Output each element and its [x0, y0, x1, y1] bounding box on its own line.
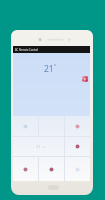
button[interactable]: Swing	[13, 157, 38, 181]
other: Timer	[75, 144, 80, 149]
button[interactable]: Sleep	[39, 157, 64, 181]
button[interactable]: Timer	[65, 137, 90, 156]
other: Mode	[75, 124, 80, 129]
button[interactable]: Power	[13, 116, 38, 136]
other: Power	[23, 124, 28, 129]
other: Swing	[23, 167, 28, 172]
button[interactable]: Settings	[65, 157, 90, 181]
other: Settings	[75, 167, 80, 172]
staticText: AC Remote Control	[15, 48, 39, 52]
other: Sleep	[49, 167, 54, 172]
staticText: 21	[44, 63, 54, 75]
button[interactable]: Fan speed	[81, 75, 89, 83]
button[interactable]: Mode	[65, 116, 90, 136]
button[interactable]: AC Remote Control	[13, 46, 90, 53]
staticText: °	[54, 63, 57, 70]
staticText: - 21 +	[33, 145, 45, 149]
